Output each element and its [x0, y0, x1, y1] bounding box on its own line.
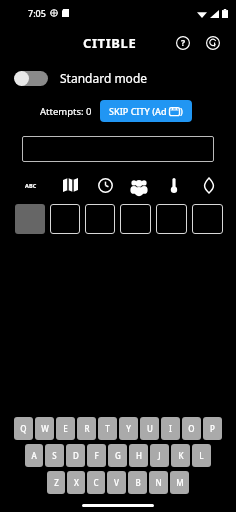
button[interactable]: Map hint	[59, 174, 81, 196]
staticText: ABC	[25, 182, 37, 189]
button[interactable]: K	[171, 444, 190, 467]
button[interactable]: Temperature hint	[163, 174, 185, 196]
button[interactable]: L	[192, 444, 211, 467]
button[interactable]: J	[150, 444, 169, 467]
button[interactable]: D	[66, 444, 85, 467]
staticText: I	[169, 423, 172, 434]
button[interactable]: Time zone hint	[94, 174, 116, 196]
button[interactable]: Settings	[200, 30, 226, 56]
staticText: D	[73, 450, 79, 461]
button[interactable]: S	[45, 444, 64, 467]
button[interactable]: V	[107, 471, 126, 494]
button[interactable]: B	[128, 471, 147, 494]
staticText: E	[63, 423, 68, 434]
button[interactable]: F	[87, 444, 106, 467]
button[interactable]: G	[108, 444, 127, 467]
staticText: ?	[181, 37, 186, 49]
staticText: R	[84, 423, 90, 434]
staticText: M	[176, 477, 184, 488]
staticText: K	[178, 450, 184, 461]
button[interactable]: Letters hint	[16, 175, 46, 195]
button[interactable]: W	[35, 417, 54, 440]
button[interactable]: Population hint	[128, 174, 150, 196]
staticText: SKIP CITY (Ad	[109, 105, 169, 117]
staticText: A	[31, 450, 37, 461]
button[interactable]: Y	[119, 417, 138, 440]
button[interactable]: A	[25, 444, 43, 467]
staticText: CITIBLE	[83, 34, 137, 52]
staticText: F	[94, 450, 99, 461]
staticText: O	[188, 423, 195, 434]
staticText: )	[180, 105, 183, 117]
button[interactable]	[50, 204, 80, 234]
button[interactable]: P	[203, 417, 222, 440]
staticText: W	[41, 423, 49, 434]
button[interactable]	[156, 204, 187, 234]
button[interactable]: R	[77, 417, 96, 440]
button[interactable]: Standard mode	[14, 70, 236, 86]
button[interactable]: I	[161, 417, 180, 440]
button[interactable]	[120, 204, 151, 234]
staticText: H	[136, 450, 142, 461]
staticText: P	[210, 423, 215, 434]
button[interactable]	[15, 204, 45, 234]
staticText: 7:05	[28, 7, 46, 19]
staticText: S	[52, 450, 57, 461]
staticText: T	[105, 423, 110, 434]
staticText: Z	[54, 477, 59, 488]
button[interactable]	[85, 204, 115, 234]
staticText: N	[155, 477, 162, 488]
staticText: L	[199, 450, 204, 461]
staticText: V	[114, 477, 119, 488]
staticText: Attempts: 0	[40, 105, 92, 118]
button[interactable]: C	[87, 471, 105, 494]
button[interactable]	[192, 204, 223, 234]
button[interactable]: Q	[14, 417, 33, 440]
button[interactable]: Z	[47, 471, 65, 494]
staticText: Standard mode	[60, 70, 148, 86]
staticText: J	[158, 450, 161, 461]
staticText: Q	[20, 423, 27, 434]
button[interactable]: O	[182, 417, 201, 440]
button[interactable]: E	[56, 417, 75, 440]
button[interactable]: H	[129, 444, 148, 467]
button[interactable]: T	[98, 417, 117, 440]
staticText: X	[74, 477, 79, 488]
staticText: C	[93, 477, 99, 488]
button[interactable]: Help	[170, 30, 196, 56]
staticText: B	[135, 477, 141, 488]
button[interactable]: N	[149, 471, 168, 494]
button[interactable]: M	[170, 471, 189, 494]
button[interactable]: Rainfall hint	[198, 174, 220, 196]
staticText: U	[147, 423, 153, 434]
staticText: Y	[126, 423, 131, 434]
button[interactable]	[22, 136, 214, 162]
button[interactable]: U	[140, 417, 159, 440]
staticText: G	[115, 450, 121, 461]
button[interactable]: X	[67, 471, 85, 494]
button[interactable]: SKIP CITY (Ad	[100, 100, 192, 122]
